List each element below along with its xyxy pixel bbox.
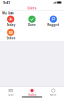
- staticText: Lists: [27, 5, 36, 10]
- staticText: Flagged: [47, 23, 59, 27]
- staticText: More: [50, 93, 57, 96]
- button[interactable]: More: [43, 89, 64, 96]
- button[interactable]: Flagged: [43, 16, 64, 27]
- button[interactable]: Lists: [0, 89, 21, 96]
- button[interactable]: Done: [21, 16, 43, 27]
- staticText: Today: [7, 23, 15, 27]
- button[interactable]: Today: [0, 16, 21, 27]
- staticText: Inbox: [7, 36, 15, 40]
- staticText: My Lists: [2, 11, 13, 15]
- button[interactable]: Today: [21, 89, 43, 96]
- staticText: Today: [28, 93, 36, 96]
- staticText: 9:41: [3, 0, 10, 5]
- staticText: Done: [28, 23, 36, 27]
- button[interactable]: Inbox: [0, 29, 21, 40]
- staticText: Lists: [8, 93, 13, 96]
